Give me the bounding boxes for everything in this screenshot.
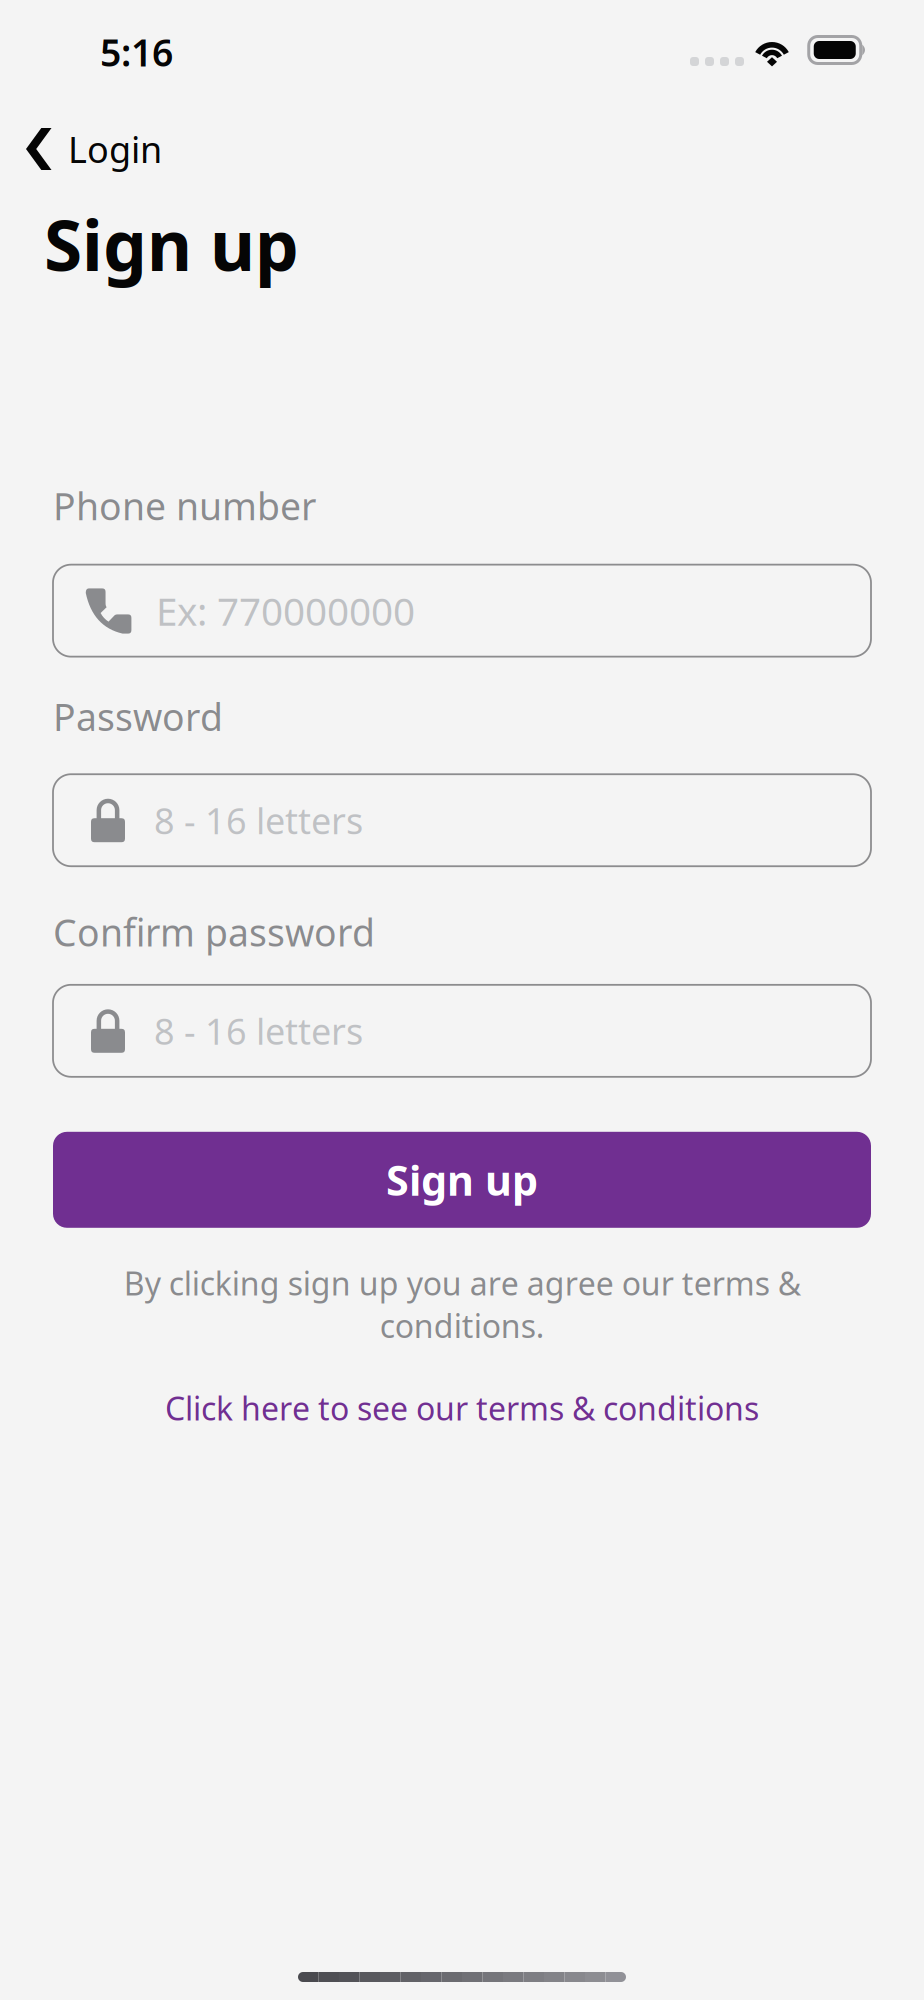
button[interactable]: 8 - 16 letters bbox=[53, 774, 871, 866]
staticText: Phone number bbox=[53, 481, 316, 531]
button[interactable]: Login bbox=[0, 125, 162, 173]
staticText: 8 - 16 letters bbox=[154, 796, 363, 844]
staticText: 8 - 16 letters bbox=[154, 1007, 363, 1055]
staticText: Click here to see our terms & conditions bbox=[165, 1387, 759, 1429]
button[interactable]: Sign up bbox=[53, 1132, 871, 1228]
button[interactable]: Ex: 770000000 bbox=[53, 565, 871, 657]
button[interactable]: Click here to see our terms & conditions bbox=[53, 1387, 871, 1429]
staticText: Ex: 770000000 bbox=[156, 585, 415, 636]
staticText: 5:16 bbox=[100, 27, 173, 77]
staticText: Sign up bbox=[44, 198, 299, 290]
staticText: Sign up bbox=[386, 1152, 538, 1207]
staticText: By clicking sign up you are agree our te… bbox=[123, 1262, 800, 1347]
staticText: Confirm password bbox=[53, 907, 375, 957]
button[interactable]: 8 - 16 letters bbox=[53, 985, 871, 1077]
staticText: Password bbox=[53, 692, 223, 741]
staticText: Login bbox=[68, 125, 162, 173]
